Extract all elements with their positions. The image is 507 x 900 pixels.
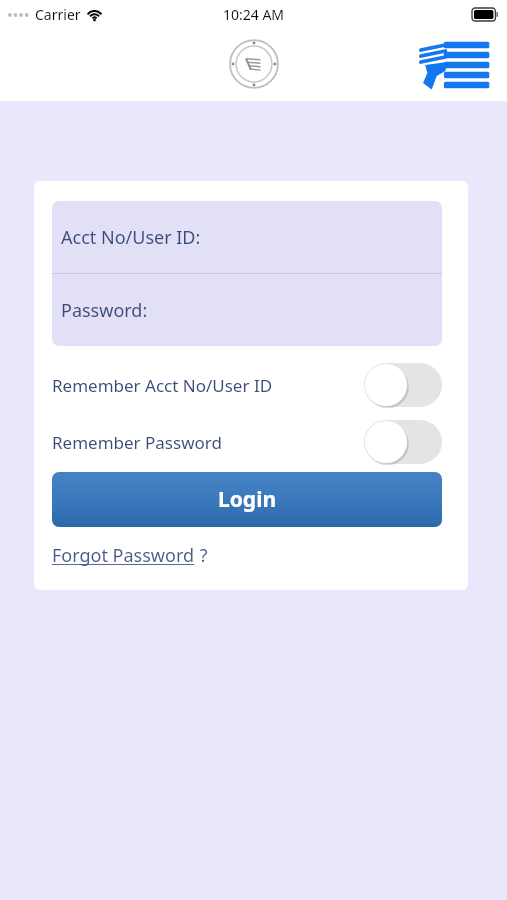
button[interactable]: Acct No/User ID: <box>52 201 442 273</box>
button[interactable]: Bank seal logo <box>228 38 280 90</box>
button[interactable]: Login <box>52 472 442 527</box>
button[interactable]: Bank logo <box>418 40 490 90</box>
button[interactable]: Remember Password <box>52 420 442 464</box>
button[interactable]: Forgot Password <box>52 543 208 568</box>
staticText: Carrier <box>35 5 81 24</box>
staticText: Password: <box>61 298 148 323</box>
staticText: 10:24 AM <box>223 5 285 24</box>
other: Remember Acct No/User ID <box>364 363 442 407</box>
staticText: Acct No/User ID: <box>61 225 201 250</box>
staticText: Login <box>218 485 277 514</box>
button[interactable]: Password: <box>52 274 442 346</box>
staticText: ? <box>195 543 208 568</box>
staticText: Remember Password <box>52 431 364 454</box>
staticText: Forgot Password <box>52 543 195 568</box>
button[interactable]: Remember Acct No/User ID <box>52 363 442 407</box>
staticText: Remember Acct No/User ID <box>52 374 364 397</box>
other: Remember Password <box>364 420 442 464</box>
